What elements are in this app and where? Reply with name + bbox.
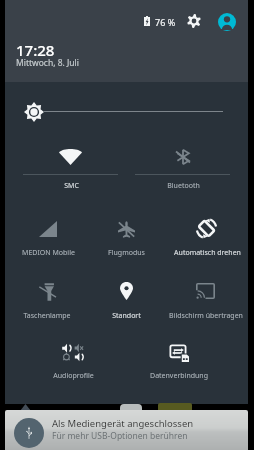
staticText: Automatisch drehen (174, 248, 241, 258)
staticText: Mittwoch, 8. Juli (16, 57, 79, 69)
button[interactable]: Bildschirm übertragen (166, 270, 245, 320)
staticText: Flugmodus (108, 248, 145, 258)
button[interactable]: Automatisch drehen (167, 208, 246, 258)
staticText: Bluetooth (167, 181, 200, 191)
staticText: 76 % (155, 16, 176, 28)
staticText: Audioprofile (53, 371, 94, 381)
staticText: Taschenlampe (23, 311, 71, 321)
button[interactable] (126, 136, 239, 194)
staticText: Für mehr USB-Optionen berühren (52, 430, 188, 442)
staticText: MEDION Mobile (22, 248, 75, 258)
button[interactable]: Flugmodus (87, 208, 166, 258)
staticText: SMC (64, 181, 79, 191)
button[interactable]: Helligkeit (10, 95, 240, 129)
button[interactable]: Nutzerprofil (213, 8, 240, 35)
staticText: Datenverbindung (150, 371, 208, 381)
button[interactable]: 17:28 (16, 40, 55, 60)
button[interactable]: Taschenlampe (8, 271, 87, 321)
button[interactable]: Als Mediengerät angeschlossen (5, 410, 248, 450)
staticText: Bildschirm übertragen (169, 311, 243, 321)
staticText: 17:28 (16, 40, 55, 60)
button[interactable] (14, 136, 127, 194)
staticText: Standort (112, 311, 141, 321)
button[interactable]: Audioprofile (34, 331, 113, 381)
staticText: Als Mediengerät angeschlossen (52, 417, 194, 430)
button[interactable]: Einstellungen (183, 10, 205, 32)
button[interactable]: Mobilfunk (8, 208, 87, 258)
button[interactable]: Datenverbindung (140, 332, 219, 382)
button[interactable]: Standort (87, 270, 166, 320)
